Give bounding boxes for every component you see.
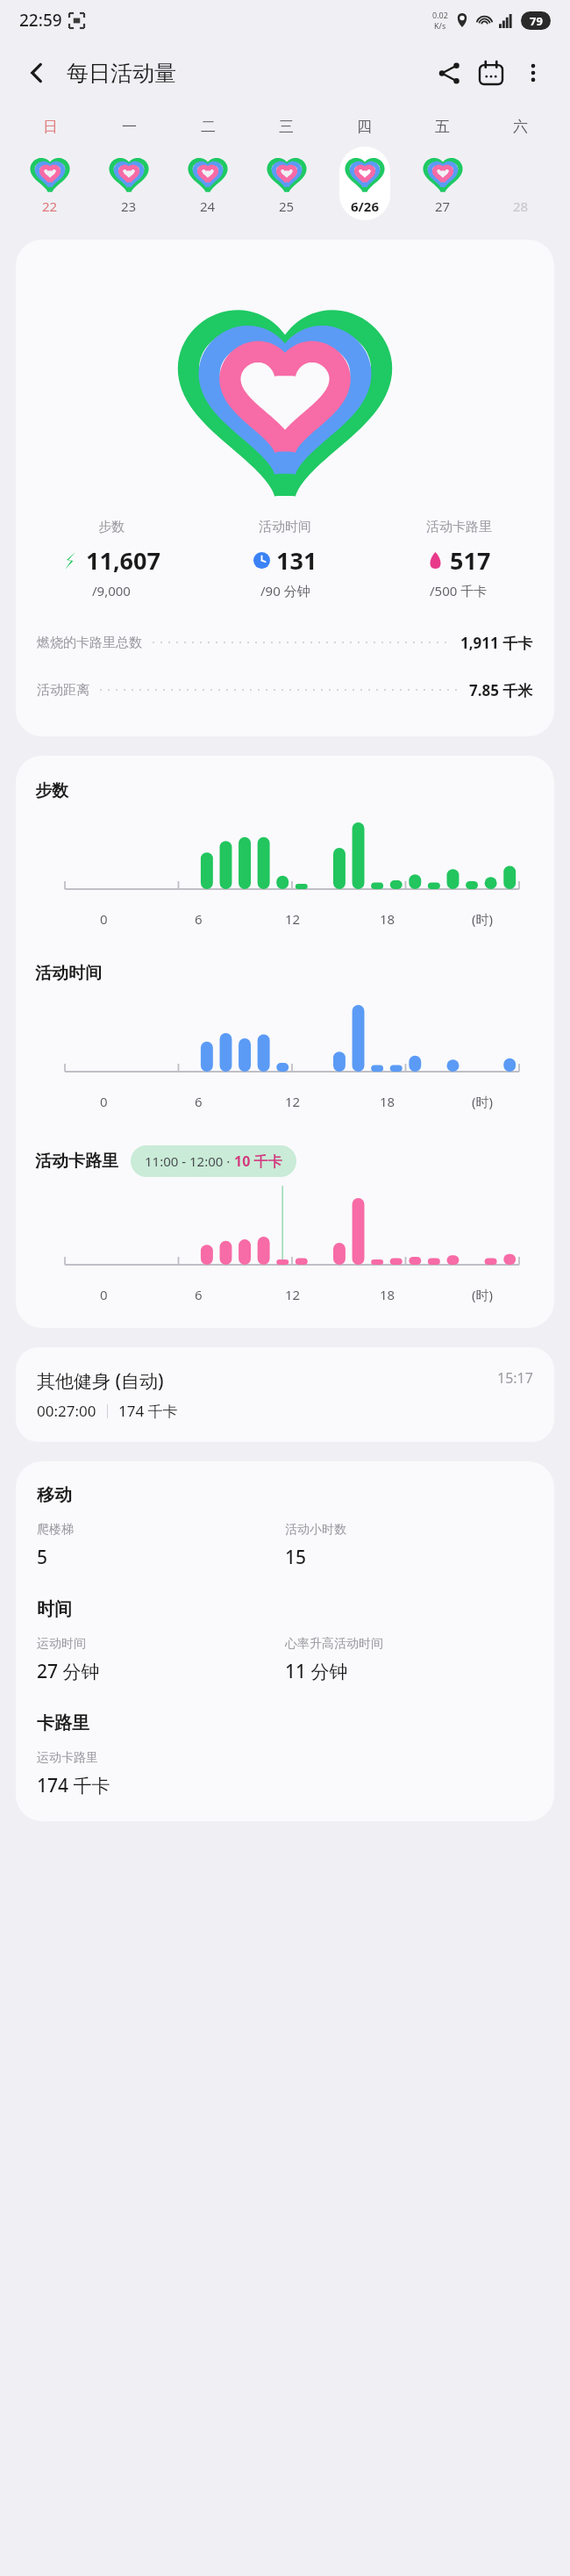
staticText: 6/26 <box>351 197 379 215</box>
staticText: 步数 <box>98 519 125 535</box>
staticText: 四 <box>357 118 372 136</box>
button[interactable]: 活动距离 <box>37 666 533 714</box>
staticText: 15 <box>285 1545 307 1570</box>
staticText: 517 <box>450 544 491 577</box>
button[interactable]: 步数 <box>16 240 554 736</box>
button[interactable]: Back <box>16 52 58 94</box>
staticText: 7.85 千米 <box>469 680 533 700</box>
staticText: 活动卡路里 <box>426 519 492 535</box>
staticText: 131 <box>276 544 317 577</box>
staticText: 燃烧的卡路里总数 <box>37 635 142 651</box>
staticText: 卡路里 <box>37 1712 89 1734</box>
staticText: 移动 <box>37 1484 72 1506</box>
button[interactable]: Share <box>428 52 470 94</box>
staticText: 活动小时数 <box>285 1522 346 1538</box>
staticText: 24 <box>200 197 216 215</box>
staticText: 174 千卡 <box>118 1401 178 1421</box>
button[interactable]: 22 <box>25 147 75 220</box>
staticText: K/s <box>434 20 446 31</box>
staticText: 6 <box>195 1286 203 1303</box>
staticText: 11:00 - 12:00 · <box>145 1152 234 1170</box>
staticText: 活动距离 <box>37 682 89 699</box>
staticText: 12 <box>285 910 301 928</box>
button[interactable]: 24 <box>182 147 233 220</box>
staticText: /9,000 <box>92 582 131 599</box>
button[interactable]: 燃烧的卡路里总数 <box>37 619 533 666</box>
staticText: 活动时间 <box>259 519 311 535</box>
button[interactable]: 其他健身 (自动) <box>16 1347 554 1442</box>
staticText: 0.02 <box>432 10 448 20</box>
staticText: 11,607 <box>86 544 160 577</box>
staticText: 0 <box>100 1286 108 1303</box>
staticText: 6 <box>195 910 203 928</box>
staticText: 时间 <box>37 1598 72 1620</box>
staticText: 1,911 千卡 <box>460 633 533 653</box>
staticText: 22:59 <box>19 9 62 32</box>
staticText: 爬楼梯 <box>37 1522 74 1538</box>
staticText: /500 千卡 <box>430 582 488 599</box>
button[interactable]: Calendar <box>470 52 512 94</box>
staticText: 22 <box>42 197 58 215</box>
staticText: 运动卡路里 <box>37 1750 98 1766</box>
staticText: (时) <box>472 910 494 928</box>
staticText: 28 <box>513 197 529 215</box>
staticText: 其他健身 (自动) <box>37 1368 164 1394</box>
staticText: 11 分钟 <box>285 1659 348 1684</box>
staticText: 174 千卡 <box>37 1773 110 1798</box>
staticText: 步数 <box>35 780 68 801</box>
staticText: 二 <box>201 118 216 136</box>
button[interactable]: More options <box>512 52 554 94</box>
staticText: (时) <box>472 1286 494 1303</box>
button[interactable]: 27 <box>417 147 468 220</box>
staticText: 活动卡路里 <box>35 1151 118 1172</box>
staticText: 27 分钟 <box>37 1659 100 1684</box>
staticText: 18 <box>380 910 395 928</box>
staticText: 5 <box>37 1545 48 1570</box>
staticText: 五 <box>435 118 450 136</box>
staticText: 10 千卡 <box>234 1152 282 1171</box>
staticText: 每日活动量 <box>67 60 176 87</box>
staticText: /90 分钟 <box>260 582 310 599</box>
staticText: 15:17 <box>497 1368 533 1388</box>
staticText: 一 <box>122 118 137 136</box>
button[interactable]: 23 <box>103 147 154 220</box>
button[interactable]: 28 <box>495 147 546 220</box>
staticText: 12 <box>285 1286 301 1303</box>
staticText: 27 <box>435 197 451 215</box>
staticText: 23 <box>121 197 137 215</box>
staticText: (时) <box>472 1093 494 1110</box>
button[interactable]: 6/26 <box>339 147 390 220</box>
staticText: 6 <box>195 1093 203 1110</box>
staticText: 心率升高活动时间 <box>285 1636 383 1652</box>
staticText: 运动时间 <box>37 1636 86 1652</box>
staticText: 18 <box>380 1286 395 1303</box>
staticText: 活动时间 <box>35 963 102 984</box>
staticText: 00:27:00 <box>37 1401 96 1421</box>
staticText: 12 <box>285 1093 301 1110</box>
staticText: 79 <box>530 13 543 29</box>
button[interactable]: 25 <box>261 147 312 220</box>
staticText: 日 <box>43 118 58 136</box>
staticText: 18 <box>380 1093 395 1110</box>
staticText: 0 <box>100 1093 108 1110</box>
staticText: 六 <box>513 118 528 136</box>
staticText: 三 <box>279 118 294 136</box>
staticText: 25 <box>279 197 295 215</box>
staticText: 0 <box>100 910 108 928</box>
